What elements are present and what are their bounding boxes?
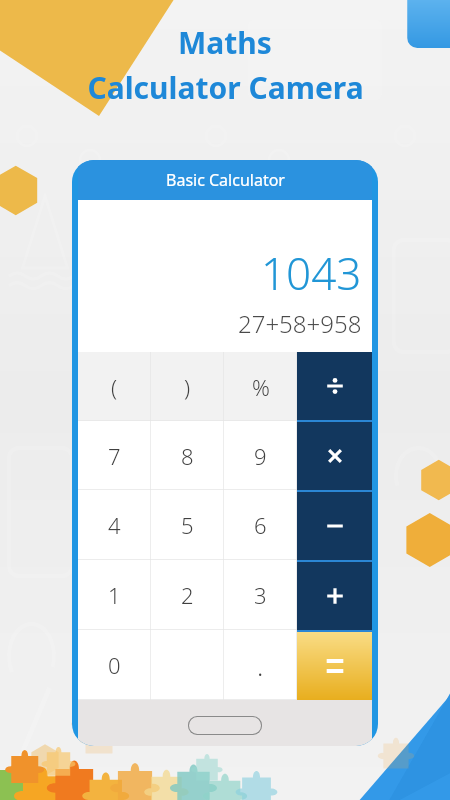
button[interactable]: .: [224, 630, 297, 700]
button[interactable]: 4: [78, 490, 151, 560]
button[interactable]: 7: [78, 421, 151, 490]
button[interactable]: 5: [151, 490, 224, 560]
button[interactable]: ): [151, 352, 224, 421]
staticText: 8: [181, 441, 194, 471]
staticText: 27+58+958: [238, 307, 362, 340]
button[interactable]: Multiply: [297, 422, 372, 490]
button[interactable]: Add: [297, 562, 372, 630]
staticText: 4: [108, 510, 121, 540]
staticText: 6: [254, 510, 267, 540]
staticText: 1: [108, 580, 121, 610]
staticText: .: [257, 648, 264, 683]
staticText: Calculator Camera: [87, 67, 364, 108]
staticText: 9: [254, 441, 267, 471]
button[interactable]: Subtract: [297, 492, 372, 560]
button[interactable]: 0: [78, 630, 151, 700]
button[interactable]: Home: [188, 716, 262, 735]
staticText: 3: [254, 580, 267, 610]
staticText: 0: [108, 650, 121, 680]
button[interactable]: [151, 630, 224, 700]
staticText: 2: [181, 580, 194, 610]
button[interactable]: 9: [224, 421, 297, 490]
staticText: (: [111, 372, 118, 402]
button[interactable]: 6: [224, 490, 297, 560]
button[interactable]: (: [78, 352, 151, 421]
staticText: Basic Calculator: [166, 169, 285, 191]
staticText: 5: [181, 510, 194, 540]
button[interactable]: 8: [151, 421, 224, 490]
staticText: 7: [108, 441, 121, 471]
button[interactable]: 1: [78, 560, 151, 630]
staticText: Maths: [178, 22, 272, 63]
button[interactable]: %: [224, 352, 297, 421]
button[interactable]: 3: [224, 560, 297, 630]
staticText: %: [252, 372, 270, 402]
button[interactable]: 2: [151, 560, 224, 630]
staticText: 1043: [261, 243, 362, 303]
staticText: ): [184, 372, 191, 402]
button[interactable]: Divide: [297, 352, 372, 420]
button[interactable]: Equals: [297, 632, 372, 700]
